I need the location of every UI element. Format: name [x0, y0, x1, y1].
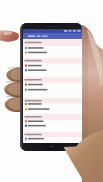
button[interactable] — [23, 39, 82, 143]
button[interactable]: Call logs — [23, 33, 82, 39]
